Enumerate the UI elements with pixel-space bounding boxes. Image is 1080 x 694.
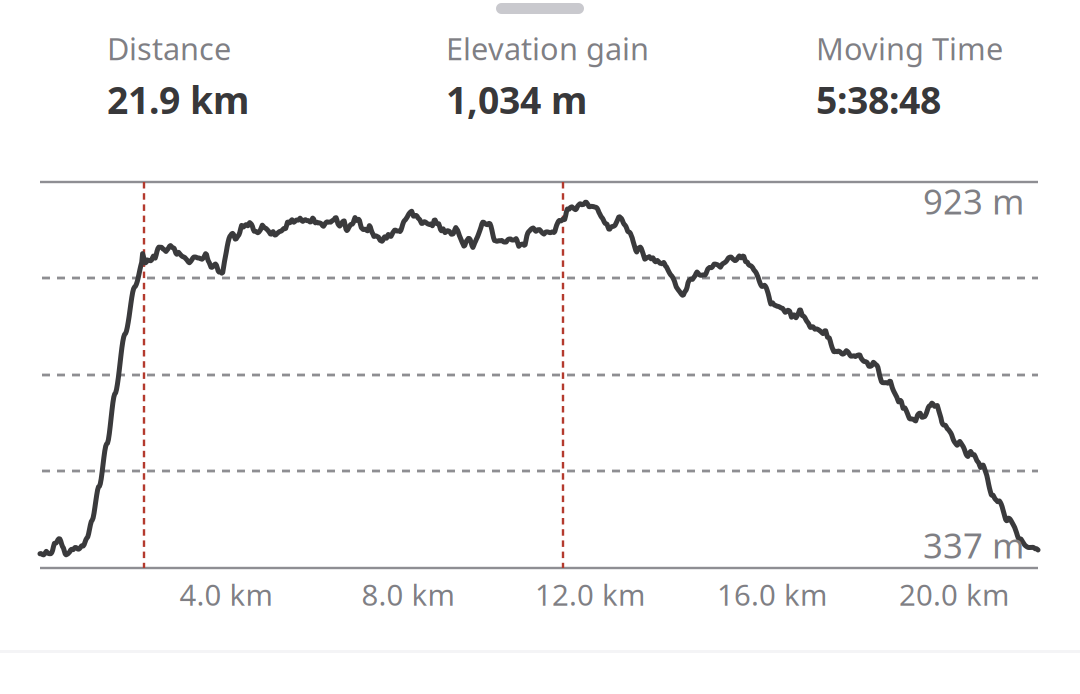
staticText: Elevation gain xyxy=(446,28,649,69)
staticText: 12.0 km xyxy=(535,575,645,614)
button[interactable]: Distance xyxy=(107,28,446,124)
staticText: 923 m xyxy=(923,178,1024,224)
button[interactable]: Elevation gain xyxy=(446,28,816,124)
staticText: 20.0 km xyxy=(899,575,1009,614)
staticText: Distance xyxy=(107,28,231,69)
staticText: 8.0 km xyxy=(361,575,454,614)
staticText: 1,034 m xyxy=(446,75,587,124)
staticText: 16.0 km xyxy=(717,575,827,614)
staticText: 337 m xyxy=(923,522,1024,568)
staticText: 4.0 km xyxy=(179,575,272,614)
button[interactable]: Moving Time xyxy=(816,28,1080,124)
staticText: 21.9 km xyxy=(107,75,249,124)
staticText: Moving Time xyxy=(816,28,1003,69)
staticText: 5:38:48 xyxy=(816,75,941,124)
button[interactable]: Resize sheet xyxy=(0,3,1080,14)
